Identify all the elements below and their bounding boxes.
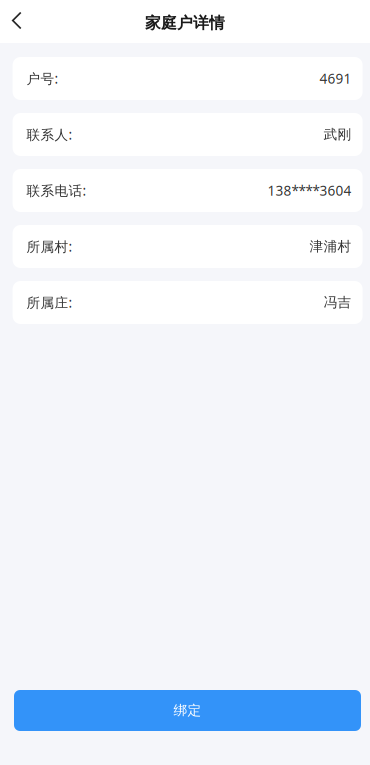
staticText: 冯吉 xyxy=(324,294,352,311)
staticText: 武刚 xyxy=(324,126,352,143)
staticText: 联系人: xyxy=(27,125,73,144)
staticText: 户号: xyxy=(27,69,59,88)
staticText: 所属庄: xyxy=(27,293,73,312)
button[interactable]: Back xyxy=(0,0,33,43)
staticText: 所属村: xyxy=(27,237,73,256)
button[interactable]: 绑定 xyxy=(14,690,361,731)
staticText: 138****3604 xyxy=(268,181,352,200)
staticText: 联系电话: xyxy=(27,181,87,200)
staticText: 津浦村 xyxy=(310,238,352,255)
staticText: 家庭户详情 xyxy=(145,13,225,33)
staticText: 4691 xyxy=(320,69,352,88)
staticText: 绑定 xyxy=(173,702,201,719)
